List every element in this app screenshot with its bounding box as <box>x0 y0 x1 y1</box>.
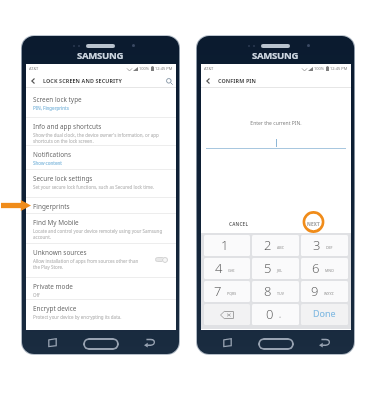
button[interactable]: Fingerprints <box>26 198 176 214</box>
staticText: 0 <box>266 305 274 323</box>
button[interactable]: 1 <box>204 235 250 256</box>
button[interactable]: Backspace <box>204 304 250 325</box>
button[interactable]: Home <box>258 338 294 350</box>
staticText: Allow installation of apps from sources … <box>33 258 143 270</box>
staticText: 100% <box>139 66 150 71</box>
button[interactable]: Home <box>83 338 119 350</box>
button[interactable]: Encrypt device <box>26 300 176 324</box>
button[interactable]: Back <box>319 338 330 347</box>
staticText: CONFIRM PIN <box>218 77 257 84</box>
staticText: SAMSUNG <box>252 49 299 62</box>
staticText: + <box>279 314 282 319</box>
button[interactable]: Navigate up <box>26 74 40 88</box>
staticText: Find My Mobile <box>33 218 79 227</box>
staticText: Enter the current PIN. <box>201 120 351 127</box>
button[interactable]: Recents <box>48 338 58 347</box>
button[interactable]: 0 <box>252 304 299 325</box>
button[interactable]: Info and app shortcuts <box>26 118 176 146</box>
other: Callout arrow <box>1 200 31 211</box>
staticText: Fingerprints <box>33 202 70 211</box>
staticText: LOCK SCREEN AND SECURITY <box>43 77 122 84</box>
button[interactable]: Unknown sources <box>26 244 176 278</box>
staticText: 2 <box>264 236 272 254</box>
button[interactable]: Done <box>301 304 348 325</box>
staticText: NEXT <box>307 221 320 227</box>
staticText: SAMSUNG <box>77 49 124 62</box>
staticText: PQRS <box>227 291 237 296</box>
button[interactable]: 4 <box>204 258 250 279</box>
staticText: GHI <box>228 268 235 273</box>
staticText: CANCEL <box>229 221 249 227</box>
staticText: DEF <box>326 245 333 250</box>
button[interactable]: Back <box>144 338 155 347</box>
staticText: 3 <box>313 236 321 254</box>
button[interactable]: 3 <box>301 235 348 256</box>
staticText: AT&T <box>29 66 39 71</box>
staticText: 6 <box>312 259 320 277</box>
staticText: ABC <box>277 245 284 250</box>
button[interactable]: 9 <box>301 281 348 302</box>
staticText: Screen lock type <box>33 95 82 104</box>
button[interactable]: 5 <box>252 258 299 279</box>
staticText: JKL <box>277 268 283 273</box>
staticText: 8 <box>264 282 272 300</box>
button[interactable]: Screen lock type <box>26 91 176 118</box>
button[interactable]: CANCEL <box>201 211 276 233</box>
button[interactable]: 2 <box>252 235 299 256</box>
staticText: Info and app shortcuts <box>33 122 102 131</box>
button[interactable]: NEXT <box>276 211 351 233</box>
button[interactable]: Notifications <box>26 146 176 170</box>
staticText: Secure lock settings <box>33 174 93 183</box>
staticText: Set your secure lock functions, such as … <box>33 184 165 190</box>
staticText: Show content <box>33 160 165 166</box>
staticText: Off <box>33 292 165 298</box>
button[interactable]: Recents <box>223 338 233 347</box>
button[interactable]: Search <box>162 74 176 88</box>
button[interactable]: Private mode <box>26 278 176 300</box>
button[interactable]: Navigate up <box>201 74 215 88</box>
staticText: 5 <box>264 259 272 277</box>
button[interactable]: Secure lock settings <box>26 170 176 198</box>
staticText: 1 <box>221 236 229 254</box>
staticText: 100% <box>314 66 325 71</box>
staticText: AT&T <box>204 66 214 71</box>
staticText: PIN, Fingerprints <box>33 105 165 111</box>
staticText: Encrypt device <box>33 304 77 313</box>
staticText: 4 <box>215 259 223 277</box>
staticText: Show the dual clock, the device owner's … <box>33 132 165 144</box>
button[interactable]: 6 <box>301 258 348 279</box>
button[interactable]: 8 <box>252 281 299 302</box>
staticText: Notifications <box>33 150 72 159</box>
staticText: TUV <box>277 291 284 296</box>
button[interactable]: 7 <box>204 281 250 302</box>
staticText: 12:45 PM <box>155 66 173 71</box>
staticText: WXYZ <box>324 291 334 296</box>
staticText: Locate and control your device remotely … <box>33 228 165 240</box>
staticText: 7 <box>214 282 222 300</box>
staticText: Private mode <box>33 282 73 291</box>
staticText: 9 <box>311 282 319 300</box>
staticText: Done <box>313 307 336 319</box>
staticText: Protect your device by encrypting its da… <box>33 314 165 320</box>
staticText: Unknown sources <box>33 248 87 257</box>
button[interactable]: Find My Mobile <box>26 214 176 244</box>
staticText: 12:45 PM <box>330 66 348 71</box>
staticText: MNO <box>325 268 334 273</box>
